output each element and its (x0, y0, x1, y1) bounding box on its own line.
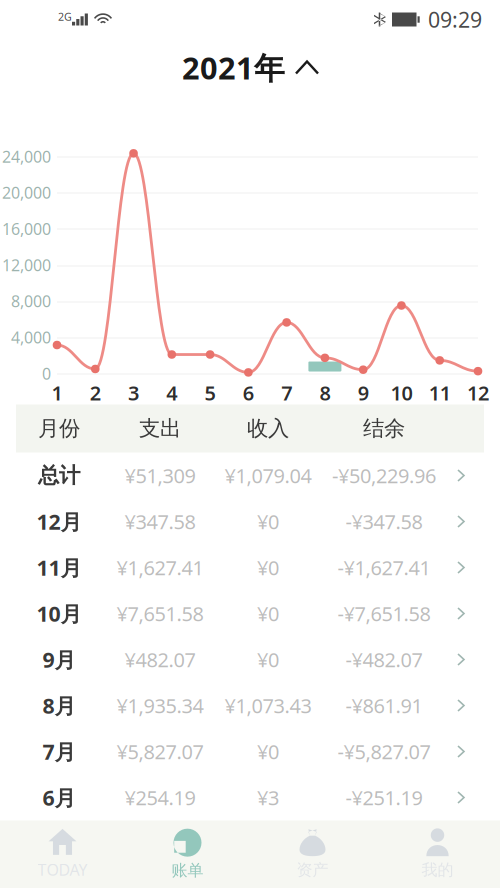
staticText: 我的 (421, 860, 453, 880)
staticText: 资产 (296, 860, 328, 880)
staticText: 7 (281, 379, 292, 406)
staticText: -¥7,651.58 (337, 600, 430, 627)
staticText: ¥1,073.43 (224, 692, 311, 719)
staticText: 12月 (36, 507, 81, 536)
staticText: 8 (319, 379, 330, 406)
staticText: ¥51,309 (124, 462, 195, 489)
staticText: 7月 (42, 737, 75, 766)
staticText: 结余 (363, 415, 405, 442)
staticText: 3 (128, 379, 139, 406)
button[interactable]: 8月 (0, 682, 500, 728)
staticText: 支出 (139, 415, 181, 442)
staticText: ¥1,079.04 (224, 462, 311, 489)
staticText: 8,000 (11, 290, 51, 312)
staticText: 10月 (36, 599, 81, 628)
button[interactable]: 11月 (0, 544, 500, 590)
staticText: 2021年 (182, 47, 285, 88)
staticText: 09:29 (428, 5, 482, 34)
staticText: ¥3 (257, 784, 279, 811)
staticText: 5 (205, 379, 216, 406)
staticText: ¥1,935.34 (116, 692, 203, 719)
staticText: 10 (390, 379, 412, 406)
staticText: 6 (243, 379, 254, 406)
staticText: 4,000 (11, 327, 51, 348)
staticText: ¥0 (257, 738, 279, 765)
staticText: 16,000 (2, 218, 51, 239)
staticText: 9 (358, 379, 369, 406)
staticText: 月份 (38, 415, 80, 442)
staticText: -¥347.58 (345, 508, 422, 535)
staticText: -¥861.91 (345, 692, 422, 719)
staticText: 4 (166, 379, 177, 406)
staticText: 账单 (171, 861, 203, 880)
staticText: ¥0 (257, 554, 279, 581)
staticText: 24,000 (2, 146, 51, 167)
staticText: 12 (467, 379, 489, 406)
staticText: ¥0 (257, 600, 279, 627)
staticText: ¥254.19 (124, 784, 195, 811)
staticText: 收入 (247, 415, 289, 442)
staticText: 0 (42, 363, 51, 384)
button[interactable]: TODAY (0, 820, 125, 888)
staticText: ¥7,651.58 (116, 600, 203, 627)
staticText: 2 (90, 379, 101, 406)
staticText: 9月 (42, 645, 75, 674)
staticText: 1 (51, 379, 62, 406)
staticText: 6月 (42, 783, 75, 812)
button[interactable]: 我的 (375, 820, 500, 888)
staticText: ¥0 (257, 646, 279, 673)
staticText: 11月 (36, 553, 81, 582)
button[interactable]: 总计 (0, 452, 500, 498)
staticText: 总计 (38, 462, 80, 489)
staticText: ¥0 (257, 508, 279, 535)
staticText: TODAY (37, 859, 87, 880)
button[interactable]: 资产 (250, 820, 375, 888)
button[interactable]: 9月 (0, 636, 500, 682)
button[interactable]: 10月 (0, 590, 500, 636)
staticText: 11 (429, 379, 451, 406)
staticText: ¥347.58 (124, 508, 195, 535)
staticText: ¥5,827.07 (116, 738, 203, 765)
button[interactable]: 7月 (0, 728, 500, 774)
staticText: -¥251.19 (345, 784, 422, 811)
staticText: ¥482.07 (124, 646, 195, 673)
staticText: 8月 (42, 691, 75, 720)
staticText: 20,000 (2, 182, 51, 203)
button[interactable]: 账单 (125, 820, 250, 888)
staticText: -¥5,827.07 (337, 738, 430, 765)
button[interactable]: 12月 (0, 498, 500, 544)
staticText: ¥1,627.41 (116, 554, 203, 581)
staticText: 2G (58, 9, 72, 24)
staticText: -¥1,627.41 (337, 554, 430, 581)
staticText: -¥50,229.96 (332, 462, 436, 489)
button[interactable]: 2021年 (0, 39, 500, 95)
button[interactable]: 6月 (0, 774, 500, 820)
staticText: 12,000 (2, 254, 51, 276)
staticText: -¥482.07 (345, 646, 422, 673)
